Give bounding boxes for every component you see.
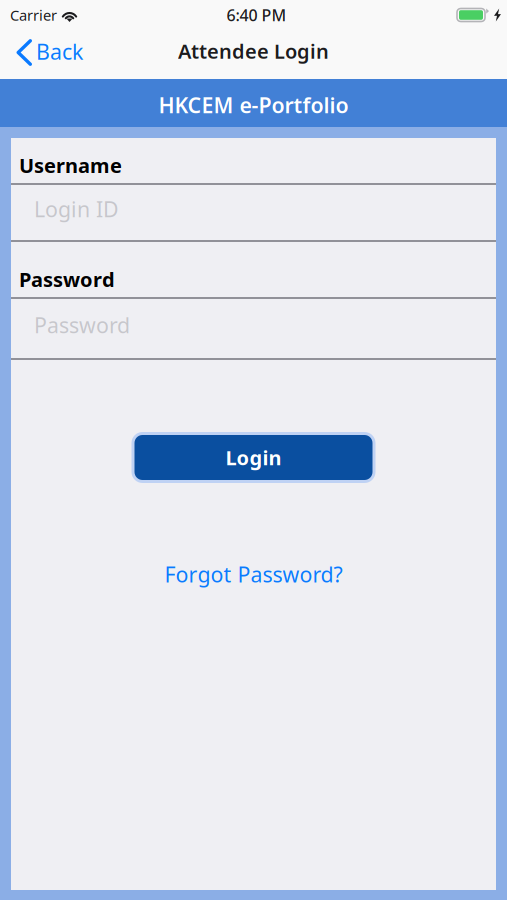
staticText: Login: [225, 444, 281, 471]
button[interactable]: Login: [131, 432, 375, 483]
staticText: Password: [19, 266, 115, 292]
staticText: Username: [19, 152, 122, 178]
button[interactable]: Forgot Password?: [156, 555, 350, 593]
staticText: Password: [34, 311, 130, 339]
button[interactable]: Back: [0, 30, 108, 79]
staticText: Attendee Login: [178, 38, 329, 64]
staticText: Login ID: [34, 195, 119, 223]
staticText: Carrier: [10, 5, 57, 25]
staticText: Back: [36, 37, 83, 66]
staticText: HKCEM e-Portfolio: [158, 91, 348, 119]
staticText: Forgot Password?: [164, 560, 342, 588]
button[interactable]: Login ID: [11, 185, 496, 240]
staticText: 6:40 PM: [226, 4, 286, 26]
button[interactable]: Password: [11, 299, 496, 358]
